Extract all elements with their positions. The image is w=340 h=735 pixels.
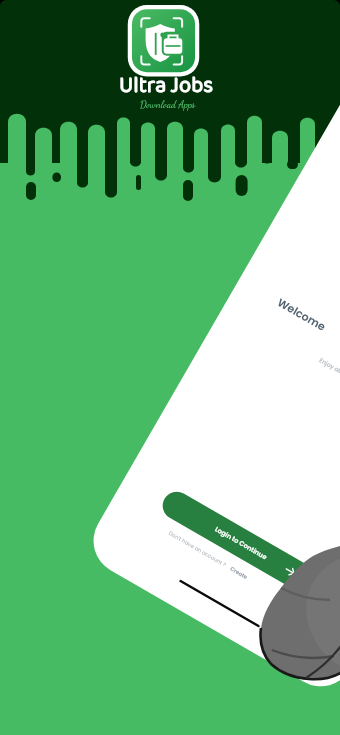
button[interactable] [0, 0, 340, 735]
